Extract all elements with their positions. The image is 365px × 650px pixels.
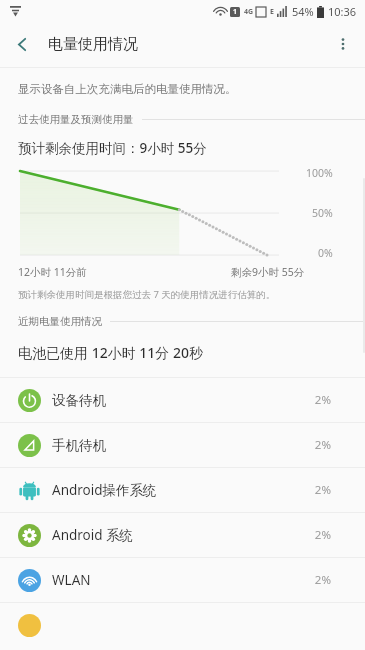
staticText: 显示设备自上次充满电后的电量使用情况。 [18, 82, 237, 96]
staticText: 50% [312, 206, 333, 220]
staticText: 设备待机 [52, 392, 106, 409]
staticText: 过去使用量及预测使用量 [18, 113, 134, 126]
staticText: 2% [314, 392, 331, 408]
staticText: 10:36 [328, 4, 357, 19]
staticText: 剩余9小时 55分 [231, 265, 305, 279]
staticText: 2% [314, 572, 331, 588]
staticText: 1 [233, 7, 238, 17]
button[interactable]: Android操作系统 [0, 468, 365, 512]
staticText: WLAN [52, 571, 91, 589]
button[interactable]: Android 系统 [0, 513, 365, 557]
button[interactable]: 手机待机 [0, 423, 365, 467]
button[interactable]: Back [0, 22, 44, 66]
button[interactable] [0, 603, 365, 647]
staticText: 2% [314, 437, 331, 453]
staticText: 0% [318, 246, 333, 260]
staticText: 电池已使用 12小时 11分 20秒 [18, 343, 203, 362]
staticText: 预计剩余使用时间：9小时 55分 [18, 139, 207, 157]
staticText: 12小时 11分前 [18, 265, 87, 279]
staticText: 4G [244, 7, 254, 17]
staticText: Android 系统 [52, 526, 134, 544]
staticText: 近期电量使用情况 [18, 315, 102, 328]
staticText: 电量使用情况 [48, 35, 138, 54]
staticText: 54% [292, 4, 314, 19]
staticText: 2% [314, 527, 331, 543]
button[interactable]: 设备待机 [0, 378, 365, 422]
button[interactable]: More options [321, 22, 365, 66]
staticText: E [270, 7, 274, 17]
staticText: Android操作系统 [52, 481, 157, 499]
staticText: 手机待机 [52, 437, 106, 454]
staticText: 预计剩余使用时间是根据您过去 7 天的使用情况进行估算的。 [18, 288, 276, 301]
button[interactable]: WLAN [0, 558, 365, 602]
staticText: 2% [314, 482, 331, 498]
staticText: 100% [306, 166, 333, 180]
